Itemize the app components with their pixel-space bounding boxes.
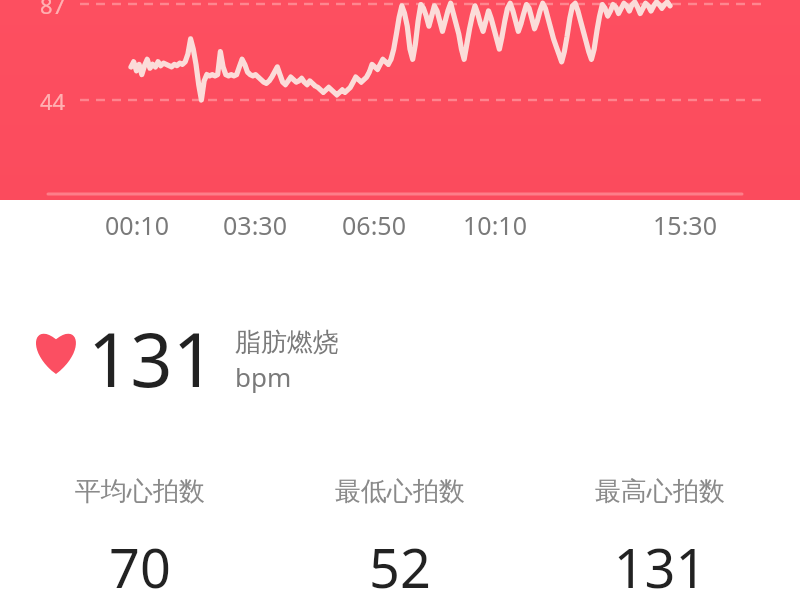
button[interactable]: 最低心拍数 [280, 475, 520, 600]
staticText: 131 [88, 308, 215, 409]
staticText: 06:50 [329, 208, 419, 242]
staticText: bpm [235, 359, 292, 394]
other: Heart rate [30, 320, 82, 380]
staticText: 52 [280, 530, 520, 600]
staticText: 10:10 [450, 208, 540, 242]
staticText: 87 [40, 0, 66, 20]
button[interactable]: 平均心拍数 [20, 475, 260, 600]
button[interactable]: 87 [0, 0, 800, 200]
staticText: 131 [540, 530, 780, 600]
staticText: 15:30 [640, 208, 730, 242]
staticText: 脂肪燃烧 [235, 326, 339, 359]
staticText: 00:10 [92, 208, 182, 242]
staticText: 最高心拍数 [540, 475, 780, 508]
button[interactable]: Heart rate [30, 320, 800, 421]
staticText: 44 [40, 86, 66, 116]
staticText: 70 [20, 530, 260, 600]
button[interactable]: 最高心拍数 [540, 475, 780, 600]
staticText: 平均心拍数 [20, 475, 260, 508]
staticText: 最低心拍数 [280, 475, 520, 508]
staticText: 03:30 [210, 208, 300, 242]
